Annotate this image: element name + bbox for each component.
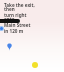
button[interactable] bbox=[0, 19, 20, 23]
staticText: turn right onto bbox=[4, 12, 38, 22]
staticText: Take the exit, then bbox=[4, 2, 38, 12]
staticText: in 120 m bbox=[4, 28, 24, 34]
staticText: Main Street bbox=[4, 22, 31, 28]
